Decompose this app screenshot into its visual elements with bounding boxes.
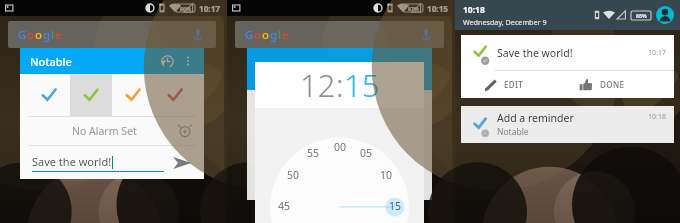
staticText: 10:15 bbox=[427, 3, 449, 14]
button[interactable]: Priority 3 bbox=[112, 74, 154, 116]
button[interactable]: G bbox=[235, 21, 444, 48]
staticText: G bbox=[245, 27, 254, 43]
staticText: Notable bbox=[497, 126, 529, 138]
staticText: DONE bbox=[600, 79, 625, 90]
staticText: Save the world! bbox=[32, 154, 112, 169]
button[interactable]: Priority 1 bbox=[28, 74, 70, 116]
staticText: g bbox=[270, 27, 278, 43]
staticText: o bbox=[262, 27, 270, 43]
button[interactable]: Priority 2 bbox=[70, 74, 112, 116]
button[interactable]: No Alarm Set bbox=[20, 117, 204, 145]
staticText: 10:18 bbox=[463, 4, 485, 16]
staticText: 86% bbox=[636, 12, 647, 19]
staticText: Notable bbox=[30, 54, 72, 69]
staticText: 10:18 bbox=[648, 112, 666, 122]
staticText: Save the world! bbox=[497, 46, 573, 60]
button[interactable]: EDIT bbox=[461, 71, 567, 98]
staticText: l bbox=[278, 27, 282, 43]
staticText: 00 bbox=[334, 140, 347, 154]
button[interactable]: More options bbox=[180, 53, 196, 69]
staticText: 55 bbox=[307, 146, 320, 160]
staticText: g bbox=[43, 27, 51, 43]
button[interactable]: Voice search bbox=[190, 27, 206, 43]
staticText: 10 bbox=[380, 168, 393, 182]
staticText: 15 bbox=[389, 199, 402, 213]
staticText: G bbox=[18, 27, 27, 43]
staticText: 15 bbox=[344, 64, 380, 106]
staticText: e bbox=[55, 27, 62, 43]
button[interactable]: Save the world! bbox=[461, 35, 674, 98]
staticText: o bbox=[27, 27, 35, 43]
staticText: o bbox=[35, 27, 43, 43]
button[interactable]: Priority 4 bbox=[154, 74, 196, 116]
staticText: 12 bbox=[300, 64, 336, 106]
staticText: e bbox=[282, 27, 289, 43]
staticText: EDIT bbox=[504, 79, 524, 90]
staticText: No Alarm Set bbox=[72, 124, 137, 138]
button[interactable]: DONE bbox=[567, 71, 674, 98]
staticText: 87% bbox=[408, 5, 419, 12]
staticText: 05 bbox=[360, 146, 373, 160]
staticText: 10:17 bbox=[648, 48, 666, 58]
staticText: Add a reminder bbox=[497, 111, 574, 125]
staticText: l bbox=[51, 27, 55, 43]
button[interactable]: History bbox=[158, 52, 176, 70]
button[interactable]: Send bbox=[170, 151, 194, 175]
staticText: 45 bbox=[278, 199, 291, 213]
button[interactable]: User profile bbox=[656, 6, 674, 24]
button[interactable]: Add a reminder bbox=[461, 106, 674, 143]
button[interactable]: Voice search bbox=[418, 27, 434, 43]
staticText: o bbox=[254, 27, 262, 43]
staticText: 10:17 bbox=[199, 3, 221, 14]
button[interactable]: G bbox=[8, 21, 216, 48]
staticText: 50 bbox=[287, 168, 300, 182]
staticText: 86% bbox=[180, 5, 191, 12]
staticText: : bbox=[336, 64, 344, 106]
staticText: Wednesday, December 9 bbox=[463, 17, 547, 27]
